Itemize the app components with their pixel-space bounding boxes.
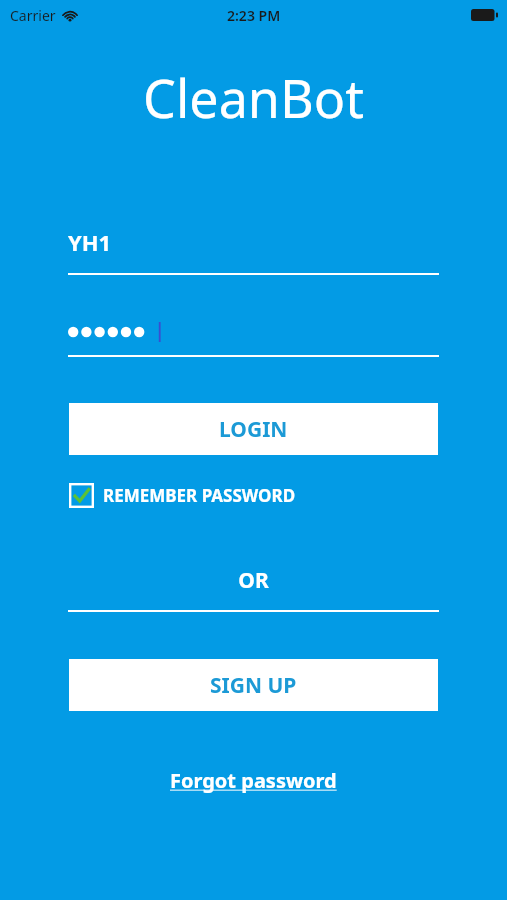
button[interactable]: REMEMBER PASSWORD: [69, 483, 296, 508]
staticText: LOGIN: [219, 415, 288, 444]
button[interactable]: YH1: [68, 227, 439, 275]
staticText: OR: [68, 566, 439, 595]
staticText: SIGN UP: [210, 671, 297, 700]
button[interactable]: SIGN UP: [69, 659, 438, 711]
button[interactable]: [68, 317, 439, 357]
staticText: Carrier: [10, 6, 56, 25]
staticText: YH1: [68, 227, 112, 257]
staticText: CleanBot: [143, 62, 364, 133]
button[interactable]: Forgot password: [170, 767, 337, 794]
button[interactable]: LOGIN: [69, 403, 438, 455]
staticText: REMEMBER PASSWORD: [103, 484, 296, 507]
staticText: 2:23 PM: [227, 6, 281, 25]
